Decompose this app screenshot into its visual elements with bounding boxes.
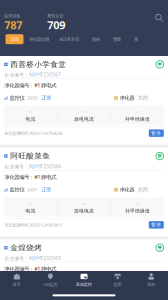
button[interactable]: 暂停 [149, 221, 164, 229]
staticText: 未正常开启 [59, 36, 79, 42]
staticText: 关闭 [138, 95, 148, 101]
staticText: 首页 [13, 282, 21, 287]
staticText: 某 [134, 36, 138, 42]
staticText: 电流 [26, 208, 36, 214]
staticText: 补甲绝缘值 [125, 116, 150, 122]
staticText: 电流 [26, 116, 36, 122]
staticText: 净化器 [120, 186, 135, 193]
button[interactable]: 搜索 [156, 14, 164, 22]
staticText: 正常 [41, 278, 51, 285]
staticText: 监测 [114, 282, 122, 287]
staticText: 放电电流 [74, 116, 94, 122]
staticText: 末次监测时间:2023-11-24 09:58:17 [4, 222, 62, 228]
staticText: 正常 [41, 186, 51, 193]
staticText: -- [29, 108, 33, 115]
staticText: -- [82, 200, 86, 207]
staticText: 超标 [92, 36, 100, 42]
staticText: 监控仪 [9, 95, 24, 101]
staticText: 末次监测时间:2023-11-24 10:46:46 [4, 130, 62, 136]
staticText: 放电电流 [74, 208, 94, 214]
staticText: 净化器编号：#1 静电式 [4, 265, 56, 272]
staticText: 企业编号：NJYHT232566 [4, 163, 61, 170]
staticText: GIS监控 [43, 282, 57, 287]
staticText: 采油监控 [76, 282, 92, 287]
staticText: 暂停 [151, 222, 161, 228]
button[interactable]: GIS监控 [34, 273, 67, 286]
staticText: 监控设备 [4, 13, 20, 19]
button[interactable]: 采油监控 [67, 273, 101, 286]
staticText: 正常 [41, 95, 51, 101]
staticText: 净化器运维 [29, 36, 49, 42]
staticText: 金煌烧烤 [10, 243, 42, 253]
button[interactable]: 预警 [113, 34, 121, 44]
staticText: -- [82, 292, 86, 298]
staticText: 我的 [147, 282, 155, 287]
staticText: -- [29, 200, 33, 207]
staticText: 监控仪 [9, 186, 24, 193]
staticText: 709 [47, 17, 65, 32]
staticText: 暂停 [151, 130, 161, 136]
button[interactable]: 我的 [134, 273, 168, 286]
staticText: 企业编号：NJYHT232567 [4, 72, 61, 78]
staticText: 净化器 [120, 95, 135, 101]
staticText: 西善桥小学食堂 [10, 60, 66, 69]
button[interactable]: 首页 [0, 273, 34, 286]
staticText: 净化器编号：#1 静电式 [4, 82, 56, 89]
staticText: -- [135, 200, 139, 207]
staticText: 企业编号：NJYHT232565 [4, 255, 61, 261]
button[interactable]: 某 [134, 34, 138, 44]
staticText: 净化器 [120, 278, 135, 285]
staticText: 关闭 [138, 186, 148, 193]
button[interactable]: 净化器运维 [29, 34, 49, 44]
staticText: 关闭 [138, 278, 148, 285]
staticText: 20230 [27, 95, 37, 101]
button[interactable]: 监测 [101, 273, 134, 286]
staticText: -- [82, 108, 86, 115]
staticText: -- [135, 108, 139, 115]
staticText: 运营 [10, 36, 18, 42]
staticText: 阿旺酸菜鱼 [10, 151, 50, 161]
button[interactable]: 未正常开启 [59, 34, 79, 44]
staticText: 787 [4, 17, 22, 32]
staticText: 20231 [27, 187, 37, 192]
staticText: 补甲绝缘值 [125, 208, 150, 214]
staticText: 监控仪 [9, 278, 24, 285]
staticText: 预警 [113, 36, 121, 42]
staticText: 餐饮企业 [47, 13, 63, 19]
staticText: 净化器编号：#1 静电式 [4, 173, 56, 181]
button[interactable]: 暂停 [149, 129, 164, 137]
button[interactable]: 运营 [5, 34, 23, 44]
button[interactable]: 超标 [92, 34, 100, 44]
